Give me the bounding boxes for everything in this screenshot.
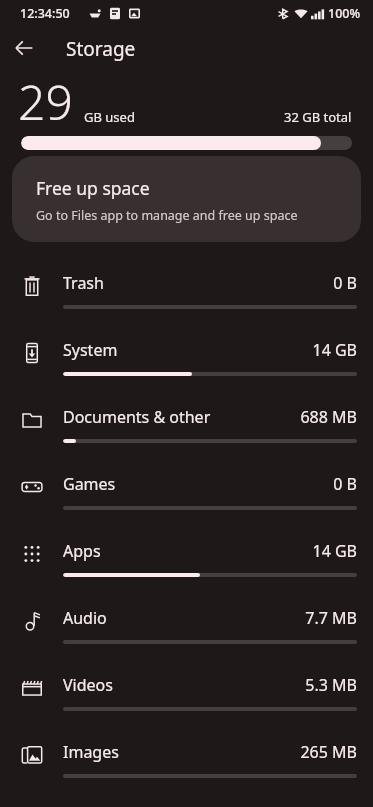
button[interactable]: Free up space xyxy=(12,156,361,242)
button[interactable]: Back xyxy=(8,32,40,64)
button[interactable]: Trash xyxy=(0,258,373,325)
staticText: 32 GB total xyxy=(284,108,352,126)
staticText: 0 B xyxy=(333,272,357,294)
button[interactable]: Videos xyxy=(0,660,373,727)
staticText: 29 xyxy=(18,69,73,134)
staticText: 5.3 MB xyxy=(305,674,357,696)
button[interactable]: Images xyxy=(0,727,373,794)
staticText: Trash xyxy=(63,272,104,294)
staticText: 14 GB xyxy=(312,339,357,361)
staticText: 0 B xyxy=(333,473,357,495)
staticText: 100% xyxy=(328,5,361,22)
staticText: Documents & other xyxy=(63,406,211,428)
button[interactable]: System xyxy=(0,325,373,392)
staticText: Apps xyxy=(63,540,101,562)
staticText: 12:34:50 xyxy=(20,5,70,22)
staticText: Free up space xyxy=(36,176,150,200)
button[interactable]: Documents & other xyxy=(0,392,373,459)
staticText: Videos xyxy=(63,674,113,696)
button[interactable]: Apps xyxy=(0,526,373,593)
staticText: Storage xyxy=(66,36,136,62)
staticText: 688 MB xyxy=(300,406,357,428)
button[interactable]: Games xyxy=(0,459,373,526)
staticText: Audio xyxy=(63,607,107,629)
staticText: 265 MB xyxy=(300,741,357,763)
staticText: GB used xyxy=(84,108,135,126)
staticText: Images xyxy=(63,741,119,763)
staticText: 14 GB xyxy=(312,540,357,562)
staticText: Games xyxy=(63,473,116,495)
button[interactable]: Audio xyxy=(0,593,373,660)
staticText: System xyxy=(63,339,118,361)
staticText: Go to Files app to manage and free up sp… xyxy=(36,207,298,224)
staticText: 7.7 MB xyxy=(305,607,357,629)
